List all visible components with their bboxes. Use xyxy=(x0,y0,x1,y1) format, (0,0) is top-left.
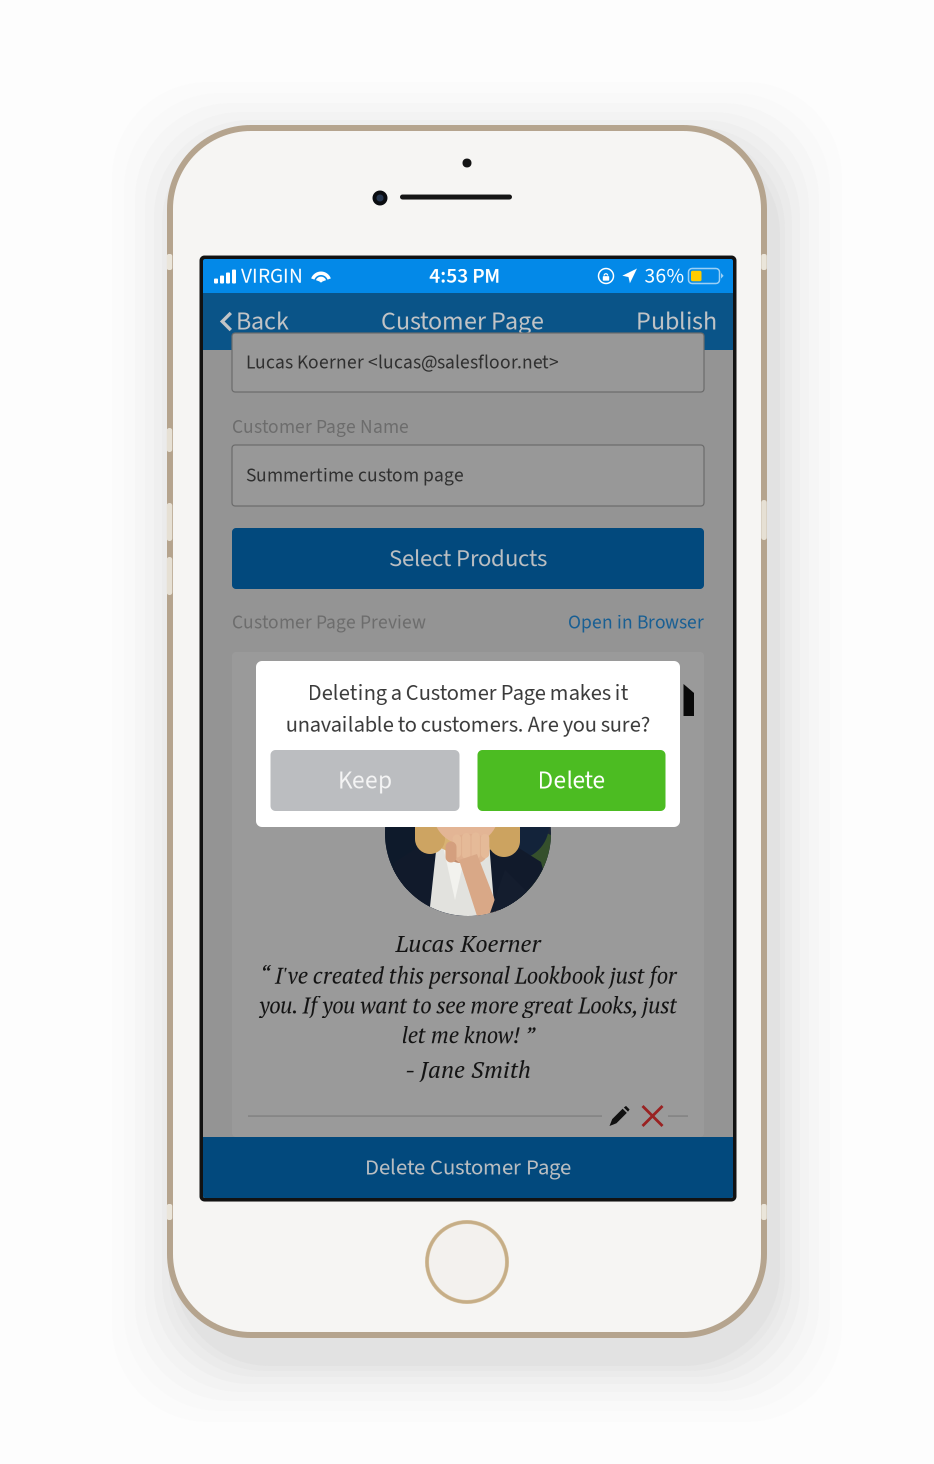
button[interactable]: Delete xyxy=(477,750,665,811)
staticText: 36% xyxy=(644,261,684,291)
staticText: Deleting a Customer Page makes it unavai… xyxy=(285,677,650,741)
button[interactable]: Summertime custom page xyxy=(232,445,704,506)
staticText: Select Products xyxy=(389,541,547,576)
staticText: Customer Page xyxy=(381,303,544,340)
button[interactable]: Keep xyxy=(270,750,459,811)
button[interactable]: Delete Customer Page xyxy=(203,1137,733,1198)
staticText: Customer Page Name xyxy=(232,413,409,441)
button[interactable]: Edit message xyxy=(602,1106,637,1125)
staticText: - Jane Smith xyxy=(405,1053,531,1085)
staticText: Lucas Koerner xyxy=(395,927,540,959)
staticText: Open in Browser xyxy=(568,609,704,636)
button[interactable]: Publish xyxy=(626,291,717,352)
staticText: Publish xyxy=(636,303,717,340)
button[interactable]: Back xyxy=(219,291,299,352)
staticText: Lucas Koerner <lucas@salesfloor.net> xyxy=(246,349,559,376)
staticText: 4:53 PM xyxy=(429,261,500,291)
staticText: Summertime custom page xyxy=(246,462,464,489)
staticText: Delete Customer Page xyxy=(365,1151,571,1184)
staticText: Delete xyxy=(537,762,605,799)
staticText: Customer Page Preview xyxy=(232,609,426,636)
button[interactable]: Open in Browser xyxy=(568,609,704,636)
button[interactable]: Lucas Koerner <lucas@salesfloor.net> xyxy=(232,333,704,392)
staticText: Back xyxy=(236,303,289,340)
staticText: Keep xyxy=(338,762,392,799)
staticText: VIRGIN xyxy=(241,261,303,291)
button[interactable]: Home xyxy=(425,1220,509,1304)
staticText: “ I've created this personal Lookbook ju… xyxy=(259,960,677,1050)
button[interactable]: Remove message xyxy=(637,1105,668,1126)
button[interactable]: Select Products xyxy=(232,528,704,589)
